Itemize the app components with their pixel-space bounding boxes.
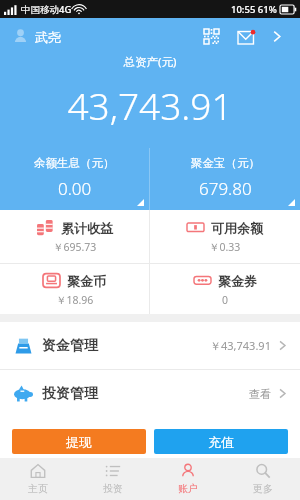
button[interactable]: 聚金券 bbox=[150, 264, 300, 314]
button[interactable]: 投资管理 bbox=[0, 370, 300, 417]
staticText: ￥0.33 bbox=[209, 240, 241, 254]
staticText: 主页 bbox=[28, 482, 48, 495]
button[interactable]: 聚金宝（元） bbox=[150, 148, 300, 210]
button[interactable]: 更多 bbox=[225, 458, 300, 500]
staticText: ￥18.96 bbox=[56, 293, 94, 307]
staticText: ￥43,743.91 bbox=[210, 338, 271, 353]
staticText: ￥695.73 bbox=[53, 240, 97, 254]
staticText: 10:55 61% bbox=[231, 3, 277, 16]
staticText: 聚金券 bbox=[218, 273, 257, 289]
button[interactable]: 聚金币 bbox=[0, 264, 149, 314]
staticText: 充值 bbox=[208, 434, 234, 450]
staticText: 中国移动4G bbox=[21, 3, 72, 16]
button[interactable]: 余额生息（元） bbox=[0, 148, 149, 210]
staticText: 0.00 bbox=[58, 177, 92, 200]
staticText: 更多 bbox=[253, 482, 273, 495]
button[interactable]: 主页 bbox=[0, 458, 75, 500]
staticText: 投资 bbox=[103, 482, 123, 495]
staticText: 余额生息（元） bbox=[34, 156, 115, 170]
button[interactable]: Messages bbox=[234, 23, 260, 49]
button[interactable]: Scan QR code bbox=[198, 23, 224, 49]
button[interactable]: 账户 bbox=[150, 458, 225, 500]
staticText: 43,743.91 bbox=[0, 80, 300, 130]
staticText: 聚金币 bbox=[67, 273, 106, 289]
button[interactable]: 投资 bbox=[75, 458, 150, 500]
staticText: 账户 bbox=[178, 482, 198, 495]
staticText: 提现 bbox=[66, 434, 92, 450]
button[interactable]: 可用余额 bbox=[150, 210, 300, 263]
staticText: 679.80 bbox=[199, 177, 252, 200]
staticText: 0 bbox=[222, 293, 229, 307]
button[interactable]: 武尧 bbox=[12, 24, 61, 49]
staticText: 武尧 bbox=[35, 29, 61, 45]
button[interactable]: 充值 bbox=[154, 429, 288, 454]
staticText: 总资产(元) bbox=[0, 54, 300, 70]
button[interactable]: 提现 bbox=[12, 429, 146, 454]
staticText: 可用余额 bbox=[211, 220, 263, 236]
button[interactable]: 累计收益 bbox=[0, 210, 149, 263]
staticText: 投资管理 bbox=[42, 385, 98, 403]
button[interactable]: More bbox=[266, 25, 288, 47]
staticText: 资金管理 bbox=[42, 337, 98, 355]
button[interactable]: 资金管理 bbox=[0, 322, 300, 369]
staticText: 聚金宝（元） bbox=[191, 156, 260, 170]
staticText: 查看 bbox=[249, 387, 271, 401]
staticText: 累计收益 bbox=[61, 220, 113, 236]
